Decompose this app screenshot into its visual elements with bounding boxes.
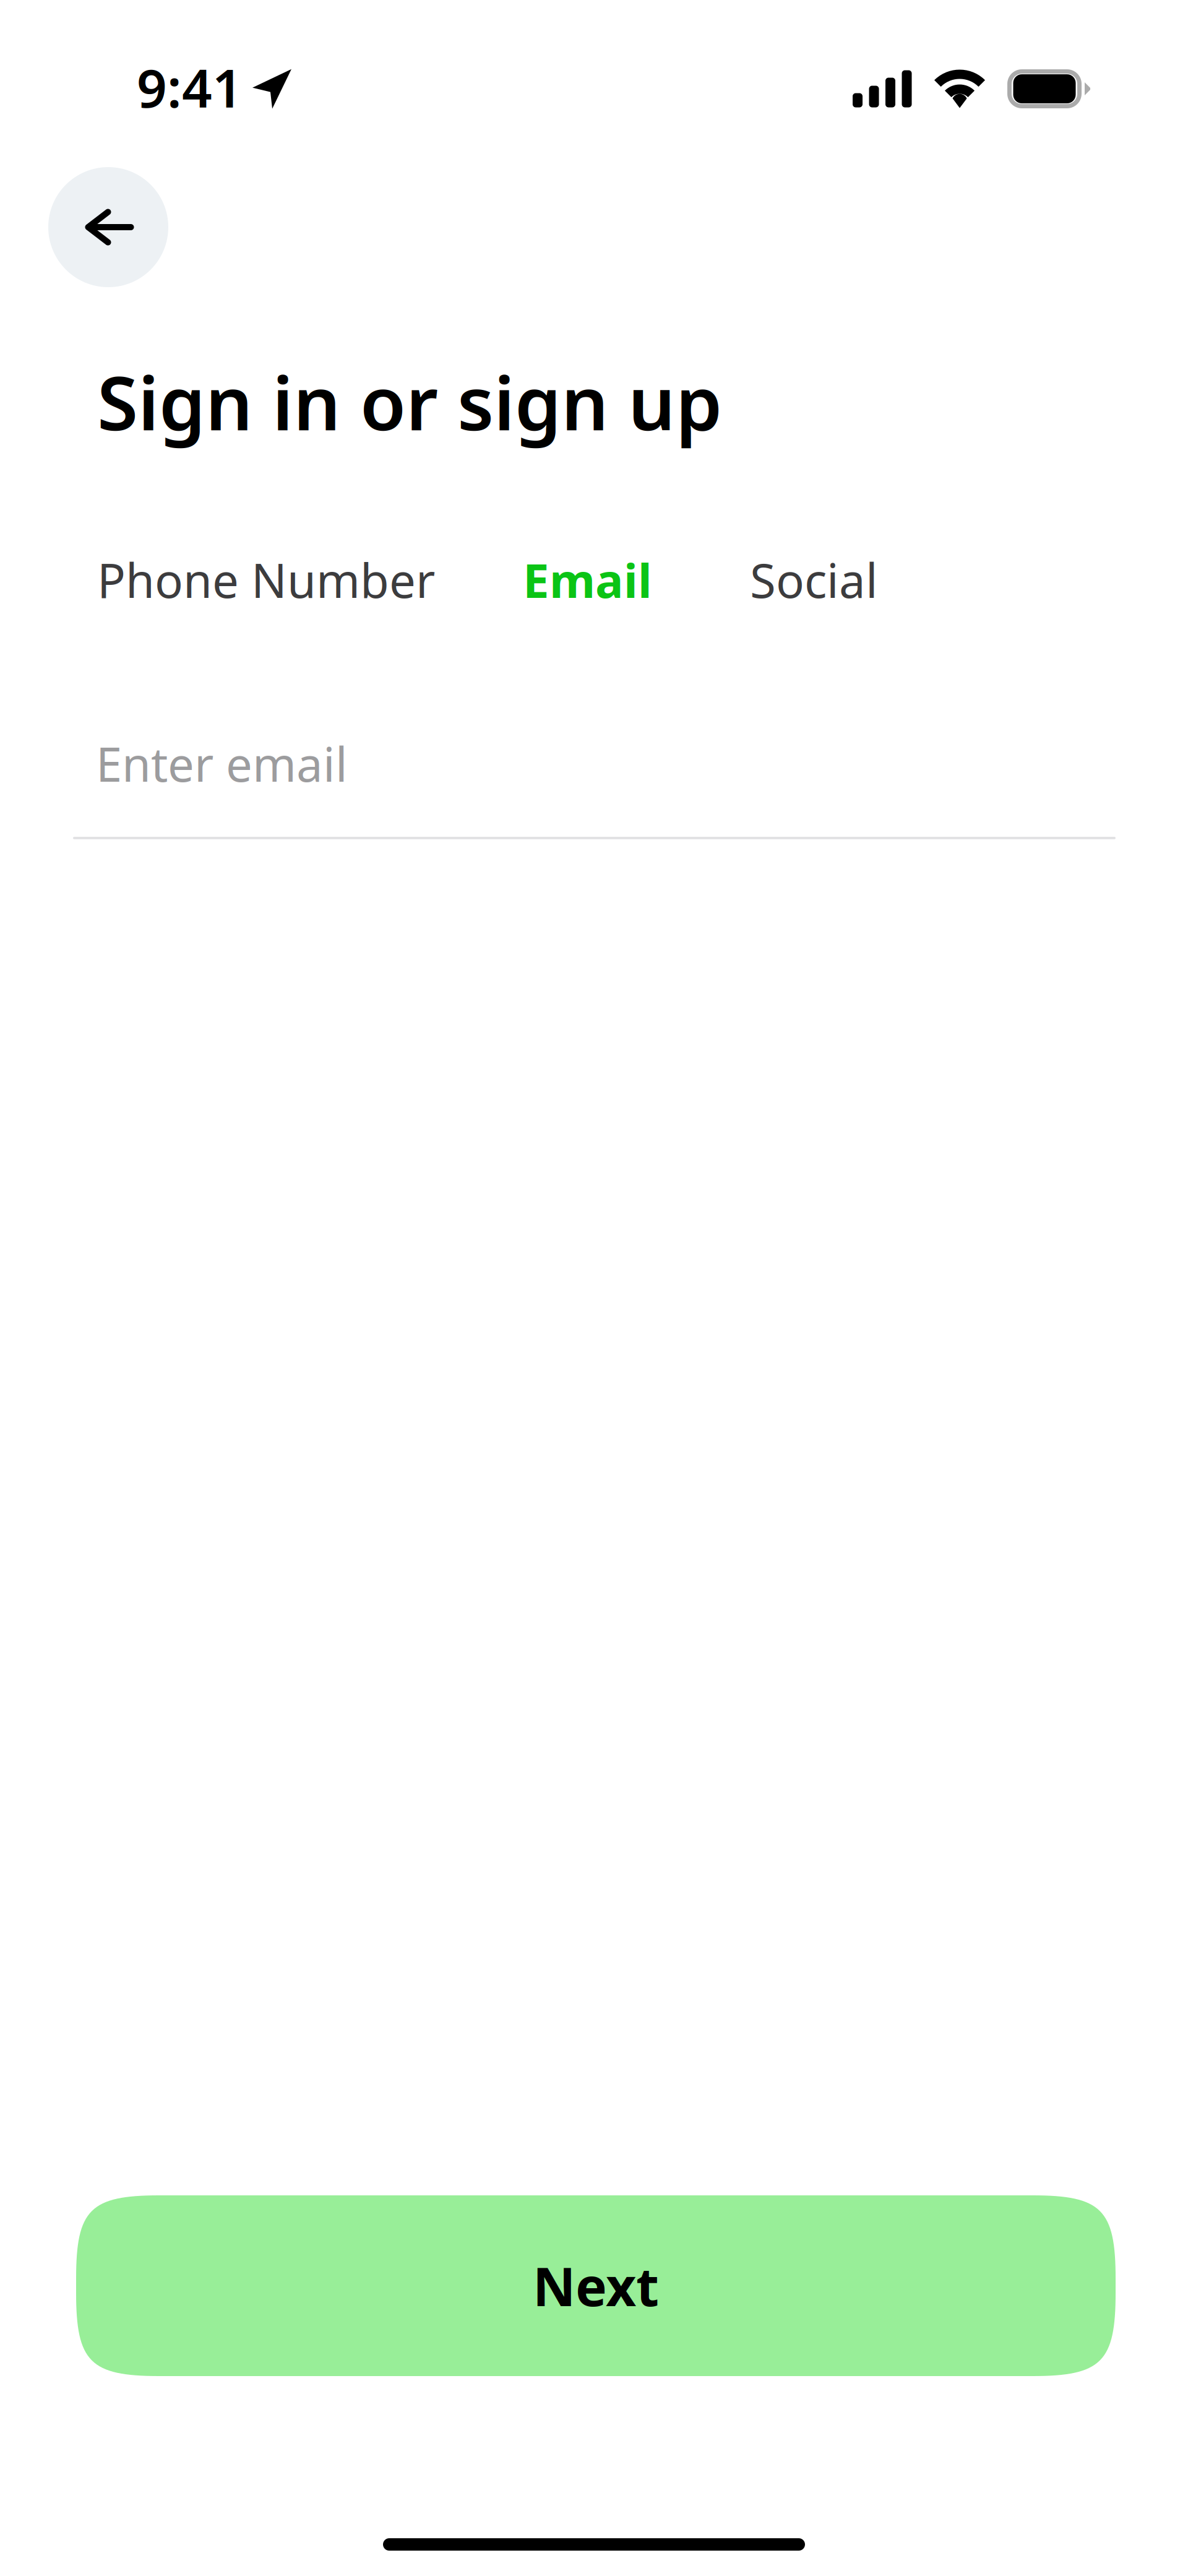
button[interactable]: Next — [76, 2195, 1116, 2376]
button[interactable]: Social — [750, 532, 878, 627]
staticText: Enter email — [96, 732, 348, 795]
button[interactable]: Enter email — [73, 732, 1116, 839]
button[interactable]: Phone Number — [97, 532, 435, 627]
staticText: Next — [533, 2251, 659, 2321]
staticText: Sign in or sign up — [97, 352, 722, 451]
staticText: Email — [523, 548, 652, 611]
staticText: Phone Number — [97, 548, 435, 611]
button[interactable]: Email — [523, 532, 652, 627]
staticText: Social — [750, 548, 878, 611]
staticText: 9:41 — [137, 52, 243, 122]
button[interactable]: Back — [48, 167, 168, 287]
